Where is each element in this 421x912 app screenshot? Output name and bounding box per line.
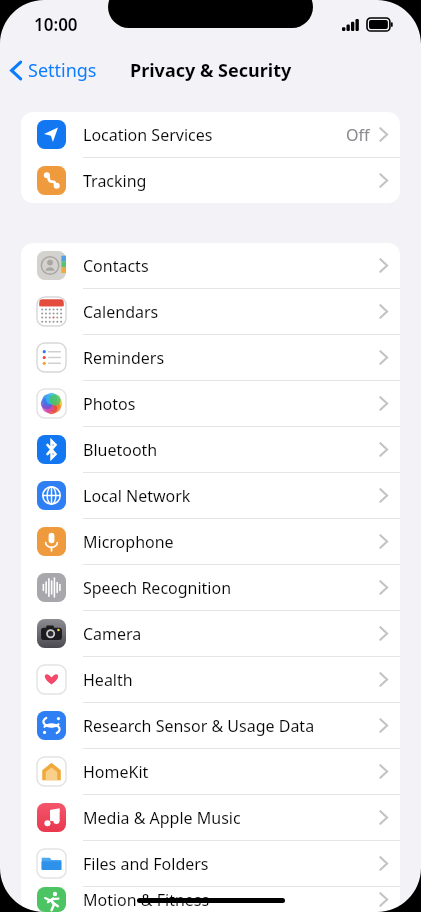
button[interactable]: Speech Recognition xyxy=(21,565,400,611)
button[interactable]: Tracking xyxy=(21,158,400,203)
staticText: Bluetooth xyxy=(83,439,379,461)
staticText: 10:00 xyxy=(34,13,78,36)
staticText: Media & Apple Music xyxy=(83,807,379,829)
staticText: Photos xyxy=(83,393,379,415)
staticText: Settings xyxy=(28,58,97,83)
button[interactable]: Calendars xyxy=(21,289,400,335)
button[interactable]: Media & Apple Music xyxy=(21,795,400,841)
staticText: Microphone xyxy=(83,531,379,553)
button[interactable]: Bluetooth xyxy=(21,427,400,473)
button[interactable]: Camera xyxy=(21,611,400,657)
staticText: HomeKit xyxy=(83,761,379,783)
button[interactable]: Contacts xyxy=(21,243,400,289)
staticText: Contacts xyxy=(83,255,379,277)
staticText: Speech Recognition xyxy=(83,577,379,599)
staticText: Local Network xyxy=(83,485,379,507)
staticText: Camera xyxy=(83,623,379,645)
button[interactable]: Microphone xyxy=(21,519,400,565)
staticText: Off xyxy=(346,124,370,146)
button[interactable]: Photos xyxy=(21,381,400,427)
button[interactable]: Research Sensor & Usage Data xyxy=(21,703,400,749)
staticText: Privacy & Security xyxy=(130,58,292,83)
button[interactable]: Local Network xyxy=(21,473,400,519)
button[interactable]: HomeKit xyxy=(21,749,400,795)
button[interactable]: Motion & Fitness xyxy=(21,887,400,912)
staticText: Calendars xyxy=(83,301,379,323)
button[interactable]: Files and Folders xyxy=(21,841,400,887)
staticText: Research Sensor & Usage Data xyxy=(83,715,379,737)
staticText: Tracking xyxy=(83,170,379,192)
button[interactable]: Reminders xyxy=(21,335,400,381)
staticText: Reminders xyxy=(83,347,379,369)
staticText: Health xyxy=(83,669,379,691)
button[interactable]: Health xyxy=(21,657,400,703)
staticText: Files and Folders xyxy=(83,853,379,875)
button[interactable]: Location Services xyxy=(21,112,400,158)
staticText: Location Services xyxy=(83,124,346,146)
button[interactable]: Settings xyxy=(0,52,105,89)
staticText: Motion & Fitness xyxy=(83,889,379,911)
